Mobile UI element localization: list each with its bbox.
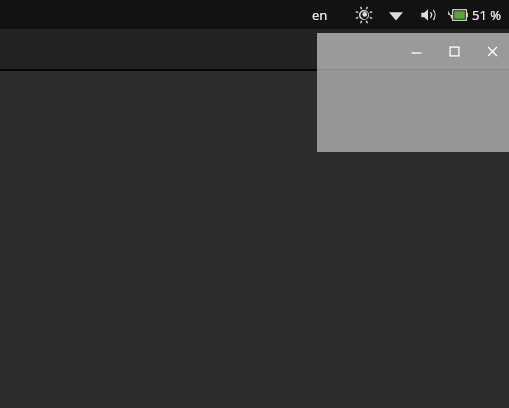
button[interactable]: Volume: [416, 3, 440, 27]
button[interactable]: Minimize: [403, 38, 429, 64]
button[interactable]: Wi-Fi: [384, 3, 408, 27]
button[interactable]: Maximize: [441, 38, 467, 64]
staticText: 51 %: [472, 6, 502, 24]
button[interactable]: Close: [479, 38, 505, 64]
button[interactable]: Battery 51 percent charging: [446, 6, 503, 24]
button[interactable]: Minimize: [317, 33, 509, 69]
button[interactable]: Night light: [352, 3, 376, 27]
button[interactable]: en: [310, 6, 330, 24]
